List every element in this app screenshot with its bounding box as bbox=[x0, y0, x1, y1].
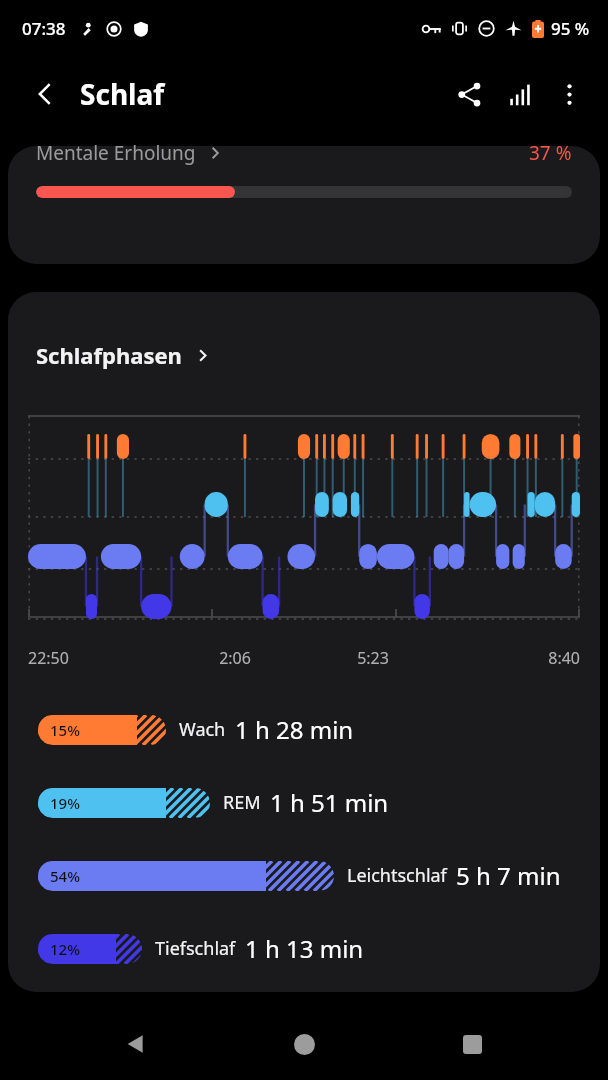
button[interactable]: Back bbox=[113, 1021, 159, 1067]
button[interactable]: More options bbox=[544, 69, 594, 119]
button[interactable] bbox=[8, 146, 600, 264]
staticText: 1 h 28 min bbox=[235, 713, 354, 746]
staticText: 8:40 bbox=[442, 647, 580, 669]
button[interactable]: Recent apps bbox=[449, 1021, 495, 1067]
button[interactable]: 12% bbox=[38, 932, 570, 965]
staticText: 37 % bbox=[529, 140, 572, 166]
staticText: 22:50 bbox=[28, 647, 166, 669]
staticText: 12% bbox=[50, 939, 80, 959]
staticText: Wach bbox=[179, 717, 226, 742]
staticText: Tiefschlaf bbox=[155, 936, 236, 961]
button[interactable]: Share bbox=[444, 69, 494, 119]
button[interactable]: 15% bbox=[38, 713, 570, 746]
staticText: 54% bbox=[50, 866, 80, 886]
staticText: 5 h 7 min bbox=[456, 859, 561, 892]
staticText: 95 % bbox=[551, 17, 590, 40]
staticText: REM bbox=[223, 790, 261, 815]
staticText: Mentale Erholung bbox=[36, 140, 196, 166]
staticText: 1 h 13 min bbox=[245, 932, 364, 965]
button[interactable]: Back bbox=[22, 71, 68, 117]
staticText: 19% bbox=[50, 793, 80, 813]
staticText: 1 h 51 min bbox=[270, 786, 389, 819]
button[interactable]: 54% bbox=[38, 859, 570, 892]
staticText: 07:38 bbox=[22, 17, 66, 40]
button[interactable]: Home bbox=[281, 1021, 327, 1067]
staticText: 5:23 bbox=[304, 647, 442, 669]
staticText: Schlafphasen bbox=[36, 340, 182, 370]
staticText: 15% bbox=[50, 720, 80, 740]
staticText: Schlaf bbox=[80, 75, 165, 113]
button[interactable]: Schlafphasen bbox=[36, 340, 210, 370]
button[interactable]: Statistics bbox=[494, 69, 544, 119]
staticText: Leichtschlaf bbox=[347, 863, 447, 888]
button[interactable]: 19% bbox=[38, 786, 570, 819]
staticText: 2:06 bbox=[166, 647, 304, 669]
